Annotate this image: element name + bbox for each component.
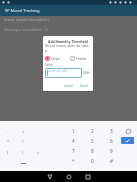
staticText: Cancel bbox=[64, 84, 74, 88]
button[interactable]: Enter bbox=[121, 137, 134, 144]
button[interactable]: = bbox=[31, 147, 45, 158]
button[interactable]: Cancel bbox=[62, 83, 76, 89]
button[interactable]: 9 bbox=[102, 145, 120, 156]
staticText: 3 bbox=[110, 128, 113, 134]
button[interactable]: Home bbox=[64, 172, 74, 182]
button[interactable]: # bbox=[102, 155, 120, 166]
staticText: Add Humidity Threshold bbox=[43, 39, 93, 43]
staticText: Sensor sample interval(min) bbox=[4, 17, 49, 22]
staticText: . bbox=[37, 129, 39, 134]
button[interactable]: 0 bbox=[83, 155, 101, 166]
button[interactable]: + bbox=[16, 126, 30, 137]
button[interactable]: ) bbox=[16, 147, 30, 158]
staticText: 8 bbox=[91, 148, 94, 154]
staticText: Value bbox=[45, 63, 53, 67]
staticText: %RH bbox=[83, 71, 90, 75]
staticText: 1 bbox=[72, 128, 75, 134]
staticText: ) bbox=[22, 150, 24, 155]
button[interactable]: Back bbox=[45, 172, 55, 182]
button[interactable]: / bbox=[16, 136, 30, 147]
button[interactable]: Larger bbox=[45, 55, 61, 62]
button[interactable]: 8 bbox=[83, 145, 101, 156]
button[interactable]: Backspace bbox=[120, 126, 136, 137]
staticText: Cloud sync interval(min) bbox=[4, 27, 43, 32]
staticText: * bbox=[7, 139, 10, 144]
button[interactable]: ( bbox=[1, 147, 15, 158]
button[interactable]: Space bbox=[9, 158, 37, 169]
button[interactable]: * bbox=[1, 136, 15, 147]
button[interactable]: Smaller bbox=[70, 55, 87, 62]
staticText: - bbox=[37, 139, 39, 144]
button[interactable]: Finish bbox=[78, 83, 91, 89]
staticText: - bbox=[7, 129, 9, 134]
button[interactable]: 1 bbox=[64, 125, 82, 136]
staticText: Threshold value bbox=[47, 69, 68, 73]
staticText: + bbox=[22, 129, 25, 134]
staticText: Smaller bbox=[76, 57, 87, 61]
button[interactable]: 5 bbox=[83, 135, 101, 146]
staticText: ( bbox=[7, 150, 9, 155]
staticText: 7 bbox=[72, 148, 75, 154]
staticText: 5 bbox=[91, 138, 94, 144]
staticText: Larger bbox=[51, 57, 61, 61]
button[interactable]: 7 bbox=[64, 145, 82, 156]
staticText: 0 bbox=[91, 158, 94, 164]
staticText: # bbox=[110, 158, 113, 164]
staticText: 9 bbox=[110, 148, 113, 154]
staticText: SF Mood Tracking bbox=[5, 8, 40, 14]
button[interactable]: Recents bbox=[83, 172, 93, 182]
button[interactable]: Threshold value bbox=[45, 68, 82, 78]
button[interactable]: 2 bbox=[83, 125, 101, 136]
button[interactable]: * bbox=[64, 155, 82, 166]
staticText: = bbox=[37, 150, 40, 155]
staticText: / bbox=[22, 139, 24, 144]
staticText: Finish bbox=[80, 84, 89, 88]
staticText: 2 bbox=[91, 128, 94, 134]
button[interactable]: 3 bbox=[102, 125, 120, 136]
button[interactable]: 6 bbox=[102, 135, 120, 146]
staticText: * bbox=[72, 158, 75, 164]
staticText: 6 bbox=[110, 138, 113, 144]
staticText: Record a event when the value is bbox=[45, 44, 90, 53]
button[interactable]: 4 bbox=[64, 135, 82, 146]
staticText: 4 bbox=[72, 138, 75, 144]
staticText: 15 bbox=[44, 27, 48, 32]
